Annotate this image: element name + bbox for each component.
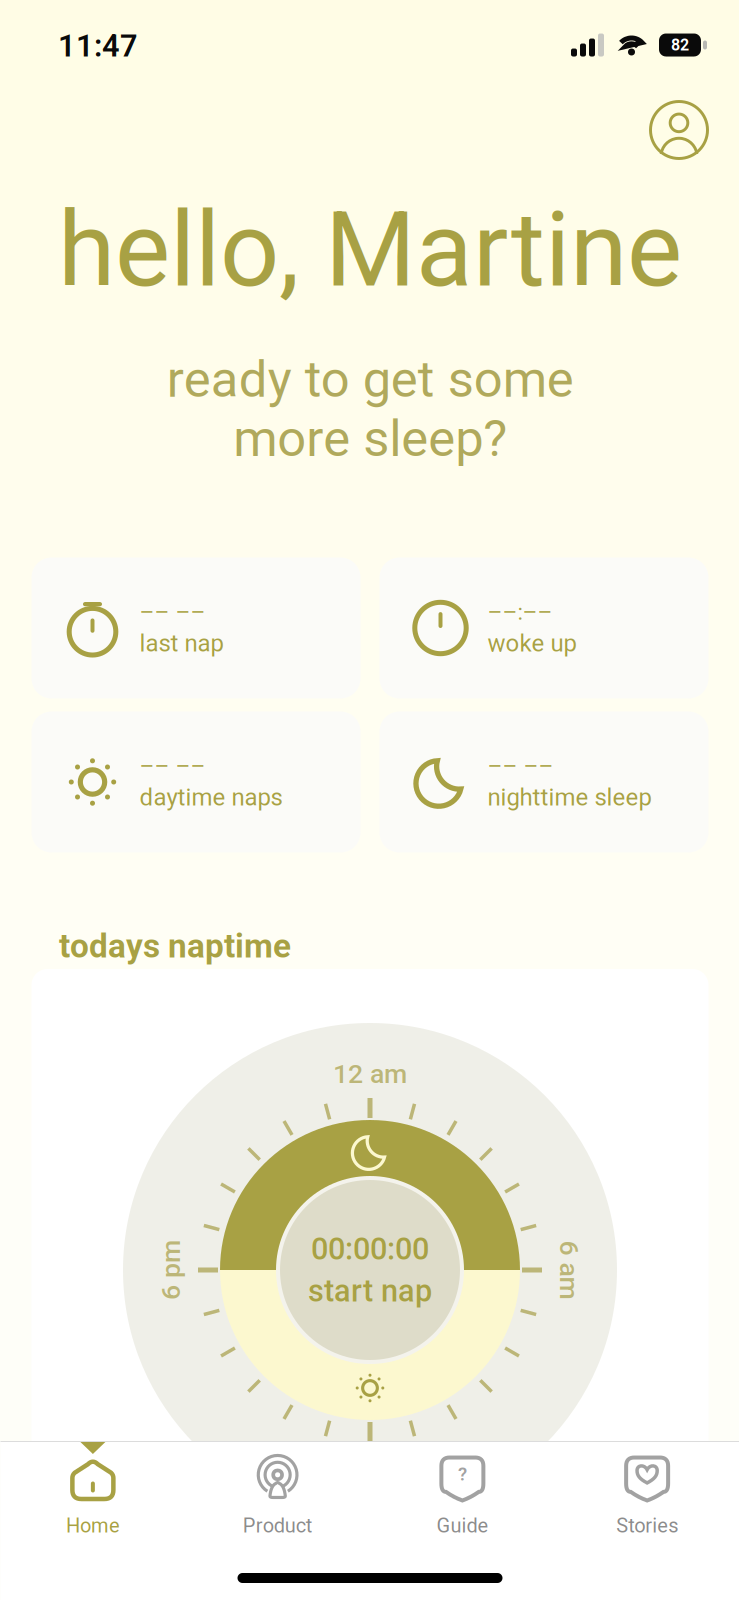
staticText: nighttime sleep bbox=[487, 783, 651, 811]
staticText: Product bbox=[243, 1514, 313, 1537]
button[interactable]: Account bbox=[640, 91, 717, 168]
staticText: ? bbox=[458, 1463, 467, 1485]
staticText: –– –– bbox=[139, 599, 205, 625]
staticText: 82 bbox=[671, 36, 689, 54]
button[interactable]: –– –– bbox=[379, 711, 708, 852]
button[interactable]: Stories bbox=[555, 1442, 739, 1560]
staticText: 11:47 bbox=[58, 28, 138, 64]
button[interactable]: Product bbox=[185, 1442, 370, 1560]
staticText: 12 am bbox=[333, 1058, 407, 1090]
button[interactable]: ––:–– bbox=[379, 557, 708, 698]
button[interactable]: –– –– bbox=[31, 557, 360, 698]
staticText: Home bbox=[66, 1514, 120, 1537]
staticText: –– –– bbox=[139, 753, 205, 779]
staticText: –– –– bbox=[487, 753, 553, 779]
staticText: woke up bbox=[487, 629, 576, 657]
staticText: todays naptime bbox=[59, 926, 291, 966]
staticText: 6 am bbox=[539, 1254, 598, 1286]
staticText: 00:00:00 bbox=[311, 1231, 429, 1267]
staticText: hello, Martine bbox=[58, 189, 682, 311]
staticText: Guide bbox=[436, 1514, 488, 1537]
staticText: daytime naps bbox=[139, 783, 282, 811]
staticText: ––:–– bbox=[487, 599, 552, 625]
staticText: last nap bbox=[139, 629, 223, 657]
button[interactable]: –– –– bbox=[31, 711, 360, 852]
staticText: ready to get some more sleep? bbox=[166, 350, 573, 468]
button[interactable]: Home bbox=[0, 1442, 185, 1560]
staticText: start nap bbox=[308, 1273, 432, 1309]
staticText: 6 pm bbox=[141, 1254, 201, 1286]
button[interactable]: ? bbox=[370, 1442, 555, 1560]
staticText: Stories bbox=[616, 1514, 678, 1537]
